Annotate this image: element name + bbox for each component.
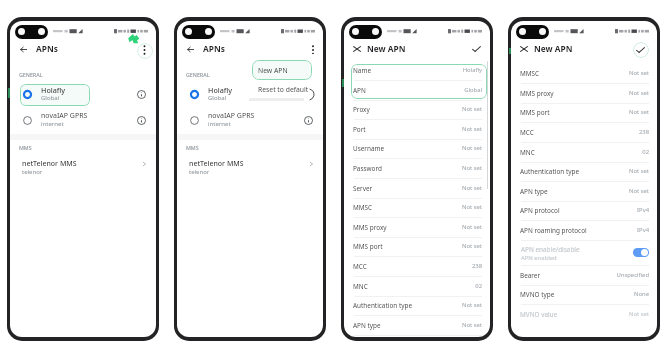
button[interactable]: MMS port — [344, 237, 490, 257]
button[interactable]: Authentication type — [344, 296, 490, 316]
staticText: New APN — [367, 43, 406, 54]
button[interactable] — [13, 155, 153, 179]
button[interactable] — [15, 109, 151, 132]
button[interactable] — [180, 155, 320, 179]
staticText: MMS — [19, 144, 32, 151]
button[interactable]: Server — [344, 179, 490, 199]
button[interactable]: Port — [344, 120, 490, 140]
button[interactable]: Back — [20, 46, 27, 53]
staticText: novaIAP GPRS — [41, 111, 88, 121]
button[interactable]: MNC — [511, 143, 657, 163]
staticText: Not set — [579, 310, 649, 318]
button[interactable]: MMSC — [344, 198, 490, 218]
staticText: MMS — [186, 144, 199, 151]
staticText: MMS port — [520, 108, 550, 117]
staticText: Not set — [412, 125, 482, 133]
button[interactable]: Authentication type — [511, 162, 657, 182]
button[interactable]: Holafly APN details — [304, 90, 313, 99]
staticText: Reset to default — [258, 85, 309, 94]
button[interactable]: Reset to default — [252, 81, 312, 97]
button[interactable]: Close — [520, 46, 528, 52]
staticText: MMS port — [353, 242, 383, 251]
staticText: Holafly — [41, 85, 66, 95]
button[interactable]: MNC — [344, 277, 490, 297]
button[interactable] — [182, 83, 318, 106]
button[interactable]: Save — [472, 46, 481, 52]
button[interactable]: MCC — [511, 123, 657, 143]
staticText: MMS proxy — [353, 223, 387, 232]
button[interactable]: More options — [137, 43, 153, 59]
button[interactable]: Proxy — [344, 100, 490, 120]
staticText: Unspecified — [579, 271, 649, 279]
staticText: Holafly — [208, 85, 233, 95]
staticText: netTelenor MMS — [189, 159, 244, 169]
button[interactable] — [15, 83, 151, 106]
staticText: MVNO value — [520, 310, 558, 319]
staticText: Name — [353, 66, 372, 75]
button[interactable]: Username — [344, 139, 490, 159]
button[interactable] — [182, 109, 318, 132]
staticText: APN enable/disable — [521, 245, 580, 254]
staticText: Not set — [579, 69, 649, 77]
button[interactable]: More options — [308, 45, 318, 55]
staticText: Password — [353, 164, 382, 173]
staticText: 02 — [579, 148, 649, 156]
staticText: MMSC — [353, 203, 373, 212]
staticText: Not set — [412, 301, 482, 309]
staticText: MNC — [353, 282, 368, 291]
button[interactable]: APN — [344, 81, 490, 101]
staticText: Authentication type — [520, 167, 579, 176]
staticText: Proxy — [353, 105, 370, 114]
button[interactable]: New APN — [252, 60, 312, 80]
staticText: Not set — [412, 105, 482, 113]
staticText: Holafly — [412, 66, 482, 74]
button[interactable]: Name — [344, 61, 490, 81]
staticText: Not set — [579, 167, 649, 175]
button[interactable]: novaIAP GPRS APN details — [304, 116, 313, 125]
button[interactable]: Password — [344, 159, 490, 179]
button[interactable]: MMS proxy — [344, 218, 490, 238]
staticText: New APN — [258, 66, 288, 75]
staticText: IPv4 — [579, 226, 649, 234]
button[interactable]: APN roaming protocol — [511, 221, 657, 241]
staticText: Not set — [412, 184, 482, 192]
staticText: Not set — [412, 164, 482, 172]
staticText: APN — [353, 86, 366, 95]
staticText: Port — [353, 125, 366, 134]
staticText: New APN — [534, 43, 573, 54]
button[interactable]: Back — [187, 46, 194, 53]
staticText: APN enabled — [521, 254, 557, 262]
staticText: Username — [353, 144, 385, 153]
staticText: MCC — [520, 128, 534, 137]
staticText: Not set — [579, 89, 649, 97]
button[interactable]: MVNO value — [511, 305, 657, 325]
staticText: internet — [208, 120, 231, 128]
staticText: APN protocol — [520, 206, 560, 215]
button[interactable]: APN type — [511, 182, 657, 202]
button[interactable]: Holafly APN details — [137, 90, 146, 99]
staticText: MMSC — [520, 69, 540, 78]
button[interactable]: Close — [353, 46, 361, 52]
button[interactable]: Save — [633, 42, 649, 58]
staticText: APN type — [353, 321, 381, 330]
button[interactable]: novaIAP GPRS APN details — [137, 116, 146, 125]
staticText: telenor — [22, 168, 43, 176]
button[interactable]: APN protocol — [511, 201, 657, 221]
staticText: Not set — [412, 144, 482, 152]
staticText: None — [579, 290, 649, 298]
button[interactable]: Bearer — [511, 266, 657, 286]
staticText: Server — [353, 184, 373, 193]
button[interactable]: APN enable/disable — [511, 240, 657, 266]
staticText: APNs — [203, 43, 225, 54]
button[interactable]: MVNO type — [511, 285, 657, 305]
button[interactable]: APN type — [344, 316, 490, 336]
button[interactable]: MMS port — [511, 103, 657, 123]
staticText: APN roaming protocol — [520, 226, 587, 235]
button[interactable]: MMSC — [511, 64, 657, 84]
button[interactable]: MMS proxy — [511, 84, 657, 104]
button[interactable]: MCC — [344, 257, 490, 277]
staticText: MMS proxy — [520, 89, 554, 98]
staticText: Global — [412, 86, 482, 94]
staticText: Not set — [412, 242, 482, 250]
staticText: 238 — [579, 128, 649, 136]
